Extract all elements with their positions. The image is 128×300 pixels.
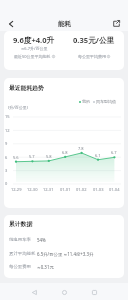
staticText: 01-04 (109, 187, 120, 192)
button[interactable]: 累计平均能耗 (4, 248, 124, 260)
staticText: 5.6 (13, 155, 19, 160)
staticText: ≈0.31元 (37, 264, 54, 270)
staticText: 5.8 (46, 154, 52, 159)
staticText: 6.1 (95, 153, 101, 158)
staticText: 6.7 (111, 150, 117, 155)
staticText: 9 (5, 141, 8, 146)
staticText: 累计平均能耗 (9, 251, 36, 257)
staticText: 9.6度+4.0升 (13, 35, 55, 45)
button[interactable]: 返回 (2, 16, 19, 31)
button[interactable]: 每公里平均费用 (78, 54, 110, 59)
staticText: 最近能耗趋势 (9, 84, 44, 91)
staticText: 5.7 (29, 154, 35, 159)
staticText: 7.8 (78, 146, 84, 151)
button[interactable]: 每公里费用 (4, 261, 124, 273)
staticText: 同车型均值 (96, 99, 116, 104)
staticText: 01-02 (76, 187, 87, 192)
staticText: 3 (5, 168, 8, 173)
button[interactable]: 纯电用车率 (4, 234, 124, 246)
staticText: 我的 (82, 99, 90, 104)
button[interactable]: 最近50公里平均能耗 (14, 54, 55, 59)
staticText: 能耗 (58, 20, 71, 28)
staticText: 15 (5, 114, 10, 119)
staticText: 每公里平均费用 (78, 54, 106, 59)
staticText: ≈6.7升/百公里 (21, 46, 48, 51)
staticText: 01-01 (60, 187, 71, 192)
staticText: 01-03 (93, 187, 104, 192)
button[interactable]: 分享 (108, 16, 125, 31)
staticText: 12-31 (43, 187, 54, 192)
staticText: 0 (5, 181, 8, 186)
staticText: 12-30 (27, 187, 38, 192)
staticText: (升/百公里) (8, 105, 28, 110)
staticText: 6 (5, 155, 8, 160)
staticText: 每公里费用 (9, 264, 31, 270)
staticText: 6.8 (62, 150, 68, 155)
button[interactable]: 主页 (56, 284, 72, 300)
staticText: 54% (37, 237, 46, 243)
button[interactable]: 返回 (26, 284, 42, 300)
staticText: 12-29 (11, 187, 22, 192)
button[interactable]: 最近任务 (86, 284, 102, 300)
staticText: 累计数据 (9, 220, 33, 227)
staticText: 6.5升/百公里 ≈11.4度+3.3升 (37, 251, 94, 257)
staticText: 12 (5, 128, 10, 133)
staticText: 0.35元/公里 (73, 35, 115, 45)
staticText: 最近50公里平均能耗 (14, 54, 51, 59)
staticText: 纯电用车率 (9, 237, 31, 243)
